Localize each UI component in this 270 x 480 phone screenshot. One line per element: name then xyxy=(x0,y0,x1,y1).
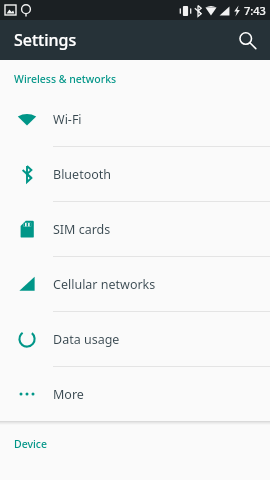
staticText: Cellular networks xyxy=(53,276,156,293)
button[interactable]: More xyxy=(0,367,270,421)
staticText: Device xyxy=(14,437,48,451)
button[interactable]: SIM cards xyxy=(0,202,270,256)
button[interactable]: Data usage xyxy=(0,312,270,366)
button[interactable]: Cellular networks xyxy=(0,257,270,311)
staticText: SIM cards xyxy=(53,221,111,238)
staticText: 7:43 xyxy=(244,3,266,18)
staticText: Wi-Fi xyxy=(53,111,82,128)
staticText: Wireless & networks xyxy=(14,72,117,86)
button[interactable]: Search xyxy=(230,23,264,57)
staticText: Settings xyxy=(14,29,77,51)
button[interactable]: Bluetooth xyxy=(0,147,270,201)
button[interactable]: Wi-Fi xyxy=(0,92,270,146)
staticText: Data usage xyxy=(53,331,120,348)
staticText: Bluetooth xyxy=(53,166,112,183)
staticText: More xyxy=(53,386,84,403)
